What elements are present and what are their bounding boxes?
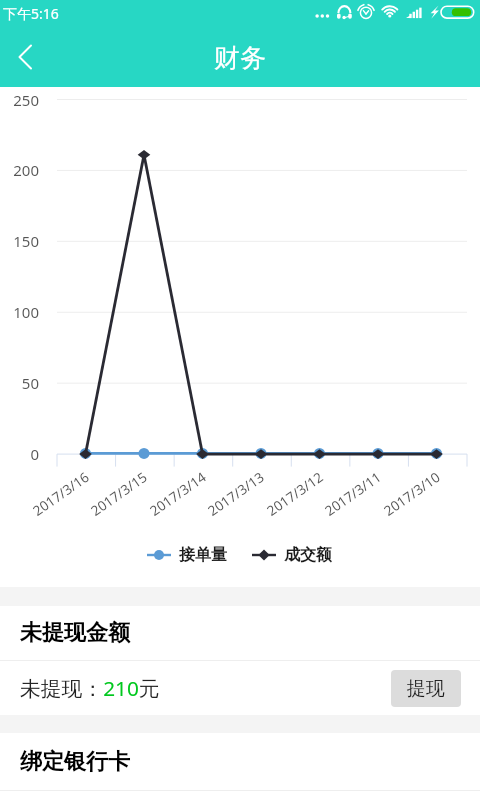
button[interactable]: 绑定银行卡 — [0, 733, 480, 790]
staticText: 2017/3/10 — [380, 467, 444, 520]
staticText: 50 — [21, 373, 39, 393]
button[interactable]: 未提现金额 — [0, 606, 480, 660]
staticText: 2017/3/14 — [146, 467, 210, 520]
staticText: 未提现金额 — [20, 619, 130, 647]
staticText: 成交额 — [284, 545, 332, 565]
staticText: 下午5:16 — [3, 4, 59, 23]
staticText: 提现 — [407, 677, 445, 701]
staticText: 未提现：210元 — [20, 674, 160, 702]
button[interactable]: 提现 — [391, 670, 461, 707]
button[interactable]: Back — [0, 32, 50, 82]
staticText: 2017/3/12 — [263, 467, 327, 520]
staticText: 接单量 — [179, 545, 227, 565]
button[interactable]: 接单量 — [147, 541, 227, 569]
staticText: 150 — [13, 231, 39, 251]
staticText: 100 — [13, 302, 39, 322]
staticText: 250 — [13, 90, 39, 110]
staticText: 2017/3/13 — [204, 467, 268, 520]
staticText: 2017/3/16 — [29, 467, 93, 520]
staticText: 绑定银行卡 — [20, 748, 130, 776]
staticText: 0 — [30, 444, 39, 464]
staticText: 2017/3/11 — [321, 467, 385, 520]
staticText: 财务 — [214, 42, 266, 75]
staticText: 2017/3/15 — [87, 467, 151, 520]
button[interactable]: 成交额 — [252, 541, 332, 569]
staticText: 200 — [13, 160, 39, 180]
